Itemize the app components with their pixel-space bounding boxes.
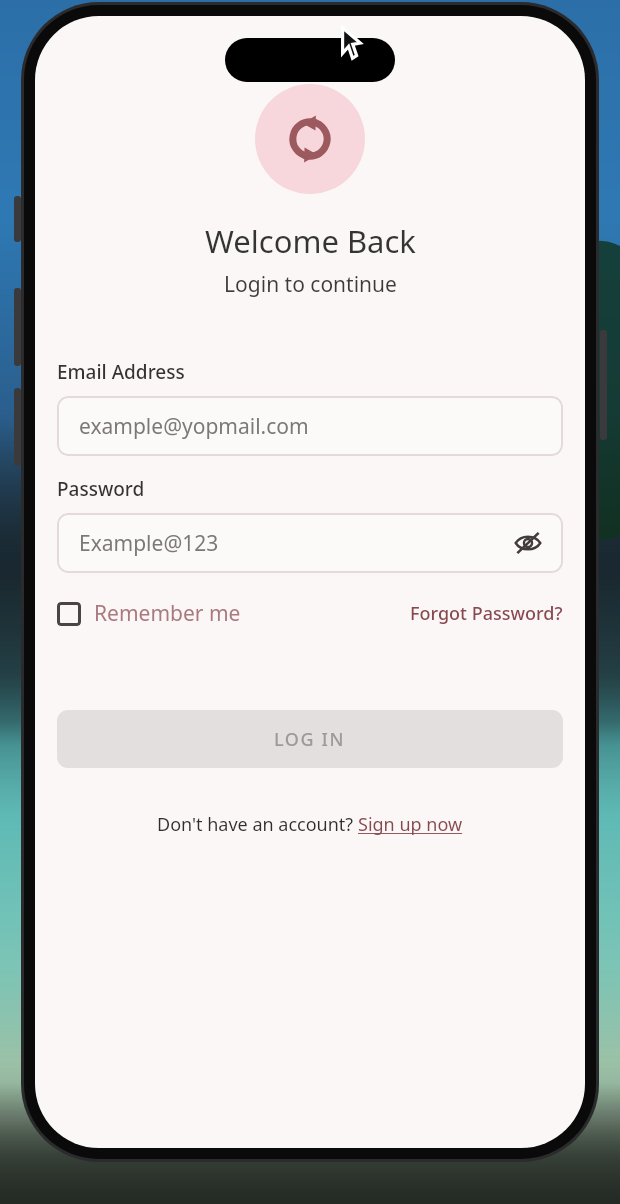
staticText: Example@123 <box>79 529 219 558</box>
staticText: example@yopmail.com <box>79 412 309 441</box>
button[interactable]: Show password <box>511 526 545 560</box>
button[interactable]: Example@123 <box>57 513 563 573</box>
button[interactable]: Sign up now <box>358 812 463 837</box>
staticText: Remember me <box>94 599 241 628</box>
staticText: Sign up now <box>358 812 463 837</box>
button[interactable]: example@yopmail.com <box>57 396 563 456</box>
staticText: Forgot Password? <box>410 601 563 626</box>
staticText: Login to continue <box>224 270 397 299</box>
staticText: Don't have an account? <box>157 812 358 837</box>
button[interactable]: Remember me <box>57 595 241 632</box>
staticText: Welcome Back <box>205 220 416 262</box>
staticText: Email Address <box>57 359 185 385</box>
staticText: LOG IN <box>274 727 346 752</box>
button[interactable]: LOG IN <box>57 710 563 768</box>
staticText: Password <box>57 476 145 502</box>
button[interactable]: Forgot Password? <box>410 597 563 630</box>
